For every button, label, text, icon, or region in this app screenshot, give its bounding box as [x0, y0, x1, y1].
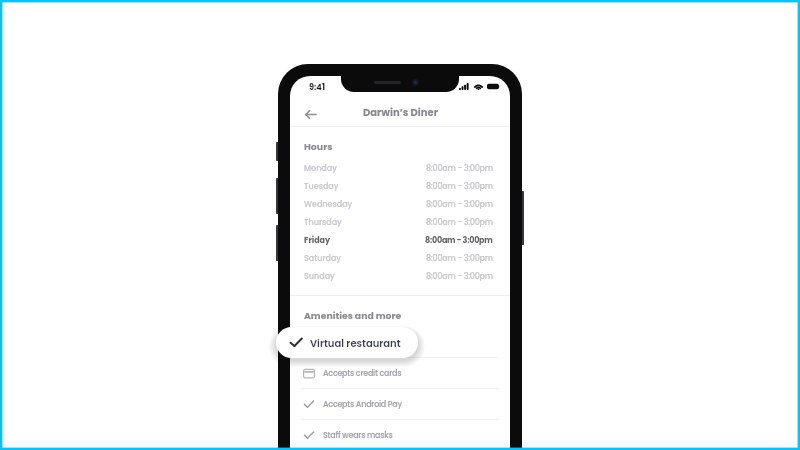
- staticText: Darwin’s Diner: [363, 105, 438, 119]
- staticText: Accepts Android Pay: [323, 399, 402, 410]
- staticText: Accepts credit cards: [323, 368, 402, 379]
- staticText: 8:00am - 3:00pm: [426, 217, 493, 228]
- button[interactable]: Friday: [290, 231, 510, 249]
- staticText: Monday: [304, 163, 337, 174]
- button[interactable]: Sunday: [290, 267, 510, 285]
- button[interactable]: Staff wears masks: [290, 420, 510, 450]
- button[interactable]: Virtual restaurant: [276, 327, 418, 358]
- staticText: Thursday: [304, 217, 342, 228]
- button[interactable]: Thursday: [290, 213, 510, 231]
- staticText: Saturday: [304, 253, 341, 264]
- staticText: Virtual restaurant: [310, 336, 401, 350]
- staticText: Wednesday: [304, 199, 353, 210]
- staticText: 9:41: [309, 81, 325, 92]
- button[interactable]: Monday: [290, 159, 510, 177]
- button[interactable]: Wednesday: [290, 195, 510, 213]
- button[interactable]: Tuesday: [290, 177, 510, 195]
- staticText: 8:00am - 3:00pm: [426, 181, 493, 192]
- button[interactable]: Accepts credit cards: [290, 358, 510, 388]
- staticText: 8:00am - 3:00pm: [426, 271, 493, 282]
- staticText: Hours: [304, 140, 333, 153]
- staticText: 8:00am - 3:00pm: [426, 163, 493, 174]
- staticText: Amenities and more: [304, 309, 402, 322]
- button[interactable]: Saturday: [290, 249, 510, 267]
- staticText: Sunday: [304, 271, 335, 282]
- staticText: Staff wears masks: [323, 430, 393, 441]
- button[interactable]: Accepts Android Pay: [290, 389, 510, 419]
- staticText: 8:00am - 3:00pm: [426, 199, 493, 210]
- staticText: 8:00am - 3:00pm: [425, 235, 493, 246]
- button[interactable]: Back: [301, 105, 319, 123]
- staticText: Friday: [304, 235, 331, 246]
- staticText: Tuesday: [304, 181, 339, 192]
- staticText: 8:00am - 3:00pm: [426, 253, 493, 264]
